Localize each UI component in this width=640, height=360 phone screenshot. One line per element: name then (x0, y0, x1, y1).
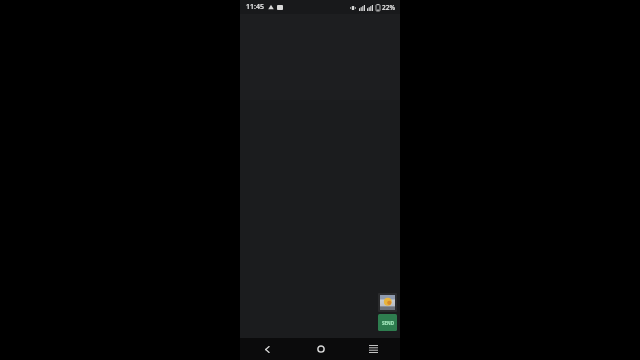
staticText: SEND (382, 320, 394, 326)
button[interactable]: Back (240, 338, 294, 360)
button[interactable]: Recent apps (347, 338, 400, 360)
button[interactable]: SEND (378, 314, 397, 331)
staticText: 11:45 (246, 2, 264, 12)
staticText: 22% (382, 3, 395, 12)
button[interactable]: Preview thumbnail (380, 295, 395, 310)
button[interactable]: Home (294, 338, 347, 360)
